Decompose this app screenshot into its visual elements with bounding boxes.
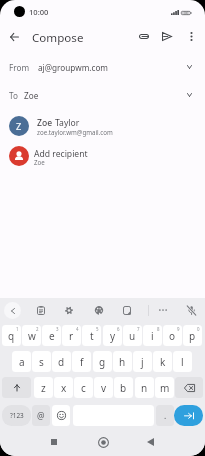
button[interactable]: y (103, 325, 122, 346)
staticText: aj@groupwm.com (38, 62, 109, 73)
button[interactable]: l (173, 351, 192, 372)
button[interactable]: h (113, 351, 132, 372)
staticText: 8 (157, 326, 160, 332)
button[interactable]: w (22, 325, 41, 346)
staticText: Zoe (34, 158, 45, 166)
button[interactable]: Emoji (52, 405, 70, 426)
button[interactable]: Stickers (118, 301, 136, 319)
staticText: k (160, 355, 166, 369)
staticText: i (151, 329, 154, 343)
staticText: g (99, 355, 106, 369)
button[interactable]: r (62, 325, 81, 346)
button[interactable]: x (54, 377, 73, 398)
staticText: Zoe (24, 90, 39, 101)
staticText: y (110, 329, 116, 343)
staticText: @ (37, 410, 45, 421)
button[interactable]: Shift (2, 377, 31, 398)
button[interactable]: Recent apps (44, 432, 64, 452)
staticText: 6 (117, 326, 120, 332)
button[interactable]: At sign (32, 405, 50, 426)
button[interactable]: Hide toolbar (4, 302, 21, 319)
button[interactable]: Settings (60, 301, 78, 319)
staticText: f (80, 355, 84, 369)
button[interactable]: Z (0, 112, 205, 140)
staticText: Zoe (37, 117, 53, 129)
button[interactable]: From (0, 56, 205, 78)
button[interactable]: e (42, 325, 61, 346)
staticText: q (8, 329, 15, 343)
button[interactable]: o (163, 325, 182, 346)
button[interactable]: Add recipient (0, 143, 205, 171)
staticText: a (19, 355, 25, 369)
staticText: 5 (96, 326, 99, 332)
button[interactable]: p (183, 325, 202, 346)
button[interactable]: Voice typing off (182, 301, 200, 319)
staticText: r (69, 329, 74, 343)
staticText: j (141, 355, 144, 369)
staticText: c (81, 381, 86, 395)
staticText: p (189, 329, 196, 343)
button[interactable]: v (94, 377, 113, 398)
staticText: b (120, 381, 127, 395)
button[interactable]: More options (154, 301, 172, 319)
button[interactable]: Period (156, 405, 174, 426)
button[interactable]: z (34, 377, 53, 398)
button[interactable]: s (32, 351, 51, 372)
button[interactable]: To (0, 84, 205, 106)
button[interactable]: f (72, 351, 91, 372)
button[interactable]: More options (181, 26, 202, 47)
button[interactable]: a (12, 351, 31, 372)
staticText: ?123 (10, 411, 24, 420)
staticText: 7 (137, 326, 140, 332)
button[interactable]: Send (156, 26, 177, 47)
button[interactable]: Attach file (133, 26, 154, 47)
staticText: l (181, 355, 184, 369)
staticText: d (58, 355, 65, 369)
button[interactable]: Themes (90, 301, 108, 319)
staticText: Taylor (55, 117, 80, 129)
staticText: From (9, 62, 30, 73)
button[interactable]: j (133, 351, 152, 372)
button[interactable]: k (153, 351, 172, 372)
button[interactable]: i (143, 325, 162, 346)
button[interactable]: Back (140, 432, 160, 452)
button[interactable]: q (2, 325, 21, 346)
button[interactable]: Enter (174, 405, 203, 426)
button[interactable]: Home (93, 432, 113, 452)
button[interactable]: m (155, 377, 174, 398)
button[interactable]: Clipboard (32, 301, 50, 319)
staticText: To (9, 90, 18, 101)
button[interactable]: t (82, 325, 101, 346)
staticText: Add recipient (34, 148, 88, 160)
button[interactable]: g (93, 351, 112, 372)
button[interactable]: Back (4, 26, 25, 47)
staticText: w (28, 329, 36, 343)
staticText: zoe.taylor.wm@gmail.com (37, 128, 113, 136)
staticText: Z (16, 120, 22, 133)
staticText: o (169, 329, 176, 343)
staticText: 9 (177, 326, 180, 332)
staticText: v (101, 381, 107, 395)
staticText: 10:00 (29, 7, 49, 17)
staticText: Compose (32, 30, 84, 46)
button[interactable]: Backspace (175, 377, 203, 398)
button[interactable]: n (135, 377, 154, 398)
button[interactable]: c (74, 377, 93, 398)
staticText: z (41, 381, 46, 395)
button[interactable]: d (52, 351, 71, 372)
staticText: 2 (36, 326, 39, 332)
staticText: n (141, 381, 148, 395)
button[interactable]: Symbols (2, 405, 31, 426)
staticText: h (119, 355, 126, 369)
staticText: u (129, 329, 136, 343)
staticText: 1 (16, 326, 19, 332)
staticText: 4 (76, 326, 79, 332)
staticText: t (90, 329, 94, 343)
staticText: 3 (56, 326, 59, 332)
button[interactable]: u (123, 325, 142, 346)
button[interactable]: b (114, 377, 133, 398)
staticText: 0 (197, 326, 200, 332)
staticText: e (49, 329, 55, 343)
staticText: x (61, 381, 67, 395)
